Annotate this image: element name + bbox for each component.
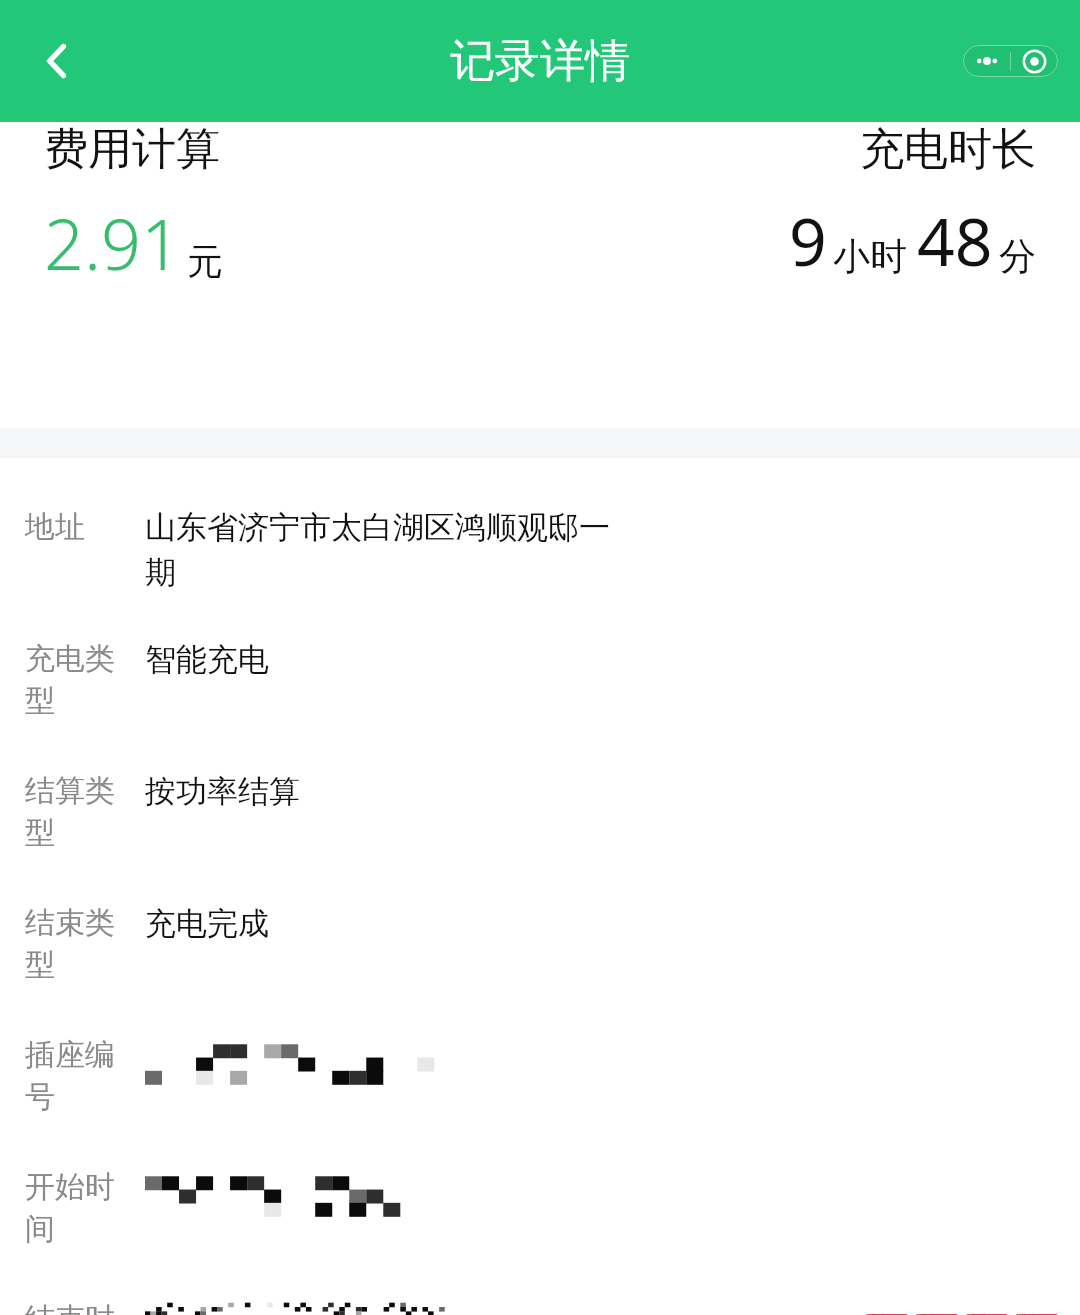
button[interactable]: 充电类型 <box>0 640 1080 720</box>
staticText: 按功率结算 <box>145 772 300 811</box>
staticText: 费用计算 <box>44 122 220 177</box>
staticText: 记录详情 <box>450 33 630 90</box>
staticText: 充电完成 <box>145 904 269 943</box>
staticText: 结束类型 <box>25 904 121 984</box>
button[interactable]: 插座编号 <box>0 1036 1080 1116</box>
staticText: 地址 <box>25 508 121 546</box>
button[interactable]: Back <box>18 21 98 101</box>
staticText: 开始时间 <box>25 1168 121 1248</box>
staticText: 9 <box>789 195 827 285</box>
button[interactable]: 结束类型 <box>0 904 1080 984</box>
staticText: 结算类型 <box>25 772 121 852</box>
button[interactable]: 结束时间 <box>0 1300 1080 1315</box>
button[interactable]: Close <box>1011 45 1058 77</box>
staticText: 2.91 <box>44 195 181 290</box>
staticText: 元 <box>187 239 223 284</box>
staticText: 48 <box>917 195 993 285</box>
button[interactable]: More <box>963 45 1011 77</box>
staticText: 结束时间 <box>25 1300 121 1315</box>
staticText: 智能充电 <box>145 640 269 679</box>
button[interactable]: 结算类型 <box>0 772 1080 852</box>
button[interactable]: 地址 <box>0 508 1080 592</box>
staticText: 小时 <box>833 233 907 280</box>
staticText: 充电类型 <box>25 640 121 720</box>
staticText: 山东省济宁市太白湖区鸿顺观邸一 期 <box>145 508 610 592</box>
staticText: 充电时长 <box>860 122 1036 177</box>
staticText: 分 <box>999 233 1036 280</box>
button[interactable]: 开始时间 <box>0 1168 1080 1248</box>
staticText: 插座编号 <box>25 1036 121 1116</box>
